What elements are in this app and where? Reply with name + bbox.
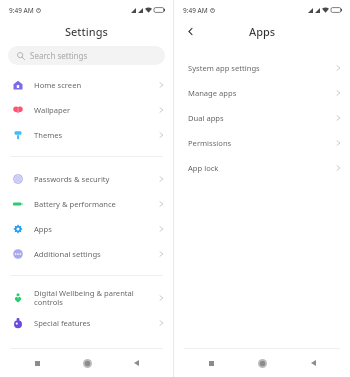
staticText: System app settings [188, 63, 336, 73]
button[interactable]: Recents [202, 354, 220, 372]
button[interactable]: Themes [0, 122, 173, 147]
staticText: Dual apps [188, 113, 336, 123]
button[interactable]: Special features [0, 310, 173, 335]
staticText: Battery & performance [34, 199, 159, 209]
staticText: Themes [34, 130, 159, 140]
button[interactable]: Back [127, 354, 145, 372]
staticText: Special features [34, 318, 159, 328]
staticText: Manage apps [188, 88, 336, 98]
staticText: Passwords & security [34, 174, 159, 184]
staticText: Additional settings [34, 249, 159, 259]
staticText: Search settings [30, 50, 88, 61]
staticText: Apps [249, 24, 276, 39]
button[interactable]: Dual apps [174, 105, 350, 130]
button[interactable]: Search settings [8, 46, 165, 65]
button[interactable]: Permissions [174, 130, 350, 155]
button[interactable]: Recents [28, 354, 46, 372]
button[interactable]: Additional settings [0, 241, 173, 266]
staticText: Settings [65, 24, 108, 39]
staticText: Digital Wellbeing & parental controls [34, 288, 159, 307]
staticText: Apps [34, 224, 159, 234]
button[interactable]: Back [304, 354, 322, 372]
staticText: Permissions [188, 138, 336, 148]
button[interactable]: Back [182, 23, 198, 39]
staticText: Home screen [34, 80, 159, 90]
button[interactable]: Wallpaper [0, 97, 173, 122]
staticText: Wallpaper [34, 105, 159, 115]
button[interactable]: Apps [0, 216, 173, 241]
button[interactable]: Home [253, 354, 271, 372]
button[interactable]: Home screen [0, 72, 173, 97]
staticText: 9:49 AM [183, 6, 208, 15]
button[interactable]: Digital Wellbeing & parental controls [0, 285, 173, 310]
staticText: 9:49 AM [9, 6, 34, 15]
button[interactable]: App lock [174, 155, 350, 180]
button[interactable]: Home [78, 354, 96, 372]
button[interactable]: Battery & performance [0, 191, 173, 216]
staticText: App lock [188, 163, 336, 173]
button[interactable]: Passwords & security [0, 166, 173, 191]
button[interactable]: System app settings [174, 55, 350, 80]
button[interactable]: Manage apps [174, 80, 350, 105]
